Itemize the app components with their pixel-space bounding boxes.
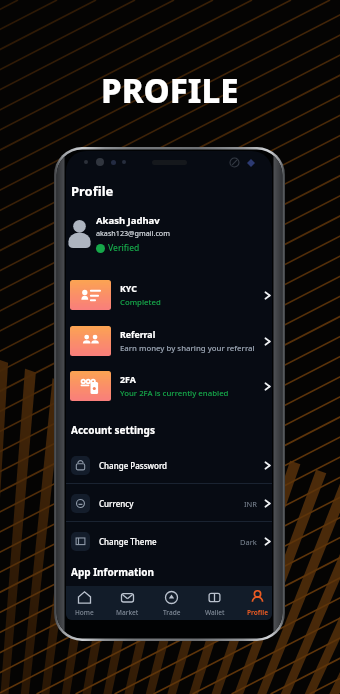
staticText: Earn money by sharing your referral	[120, 343, 255, 354]
button[interactable]: Change Theme	[66, 524, 272, 559]
button[interactable]: Currency	[66, 486, 272, 521]
button[interactable]: KYC	[66, 280, 272, 310]
button[interactable]: Profile	[245, 586, 270, 620]
button[interactable]: Trade	[159, 586, 184, 620]
staticText: Change Password	[99, 460, 264, 471]
staticText: Trade	[163, 608, 181, 617]
button[interactable]: Change Password	[66, 448, 272, 483]
staticText: Profile	[247, 608, 269, 617]
button[interactable]: Wallet	[202, 586, 227, 620]
staticText: Verified	[108, 242, 140, 254]
button[interactable]: Market	[115, 586, 140, 620]
staticText: akash123@gmail.com	[96, 228, 170, 238]
staticText: Akash Jadhav	[96, 214, 160, 227]
button[interactable]: Akash Jadhav	[66, 214, 272, 254]
staticText: 2FA	[120, 374, 136, 386]
staticText: Dark	[240, 537, 257, 547]
staticText: Referral	[120, 329, 156, 341]
staticText: KYC	[120, 283, 137, 295]
staticText: PROFILE	[101, 68, 239, 113]
staticText: Account settings	[71, 423, 155, 437]
staticText: App Information	[71, 565, 154, 579]
staticText: Change Theme	[99, 536, 240, 547]
staticText: Your 2FA is currently enabled	[120, 388, 229, 399]
staticText: INR	[244, 499, 257, 509]
staticText: Wallet	[205, 608, 225, 617]
staticText: Completed	[120, 297, 161, 308]
staticText: Home	[75, 608, 94, 617]
button[interactable]: Referral	[66, 326, 272, 356]
button[interactable]: 2FA	[66, 371, 272, 401]
staticText: Currency	[99, 498, 244, 509]
button[interactable]: Home	[72, 586, 97, 620]
staticText: Market	[116, 608, 139, 617]
staticText: Profile	[71, 182, 114, 200]
